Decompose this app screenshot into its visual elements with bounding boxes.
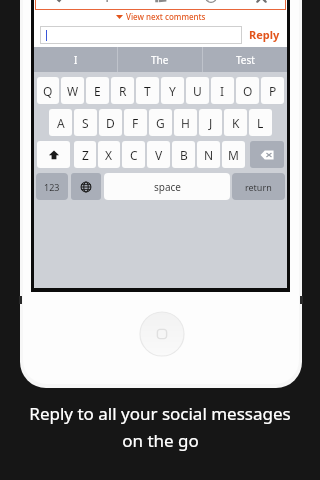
staticText: Test xyxy=(236,53,255,67)
button[interactable]: N xyxy=(197,141,220,168)
button[interactable]: space xyxy=(104,173,230,200)
button[interactable]: return xyxy=(232,173,285,200)
button[interactable]: Approve xyxy=(35,0,86,10)
staticText: Reply xyxy=(249,27,280,42)
staticText: B xyxy=(180,147,188,163)
button[interactable]: V xyxy=(147,141,170,168)
staticText: I xyxy=(74,53,78,67)
staticText: K xyxy=(232,115,240,131)
button[interactable]: U xyxy=(186,77,209,104)
button[interactable]: Switch keyboard xyxy=(71,173,101,200)
button[interactable]: I xyxy=(211,77,234,104)
staticText: return xyxy=(245,181,272,193)
button[interactable]: G xyxy=(149,109,172,136)
staticText: The xyxy=(151,53,169,67)
staticText: X xyxy=(105,147,113,163)
button[interactable]: W xyxy=(61,77,84,104)
button[interactable]: Test xyxy=(203,47,287,72)
button[interactable]: A xyxy=(49,109,72,136)
staticText: L xyxy=(257,115,264,131)
button[interactable]: The xyxy=(118,47,202,72)
staticText: C xyxy=(130,147,138,163)
button[interactable]: View next comments xyxy=(34,10,287,22)
button[interactable]: O xyxy=(236,77,259,104)
button[interactable]: T xyxy=(136,77,159,104)
staticText: Z xyxy=(82,147,89,163)
button[interactable]: L xyxy=(249,109,272,136)
staticText: W xyxy=(67,83,79,99)
staticText: J xyxy=(209,115,213,131)
staticText: P xyxy=(269,83,277,99)
button[interactable]: I xyxy=(34,47,117,72)
button[interactable]: E xyxy=(86,77,109,104)
staticText: H xyxy=(181,115,190,131)
button[interactable]: C xyxy=(122,141,145,168)
button[interactable]: Flag xyxy=(86,0,136,10)
button[interactable] xyxy=(40,26,242,44)
staticText: M xyxy=(228,147,239,163)
button[interactable]: D xyxy=(99,109,122,136)
staticText: O xyxy=(243,83,253,99)
staticText: T xyxy=(144,83,151,99)
staticText: G xyxy=(156,115,165,131)
button[interactable]: Y xyxy=(161,77,184,104)
staticText: N xyxy=(204,147,214,163)
staticText: V xyxy=(155,147,163,163)
button[interactable]: X xyxy=(98,141,120,168)
button[interactable]: Z xyxy=(74,141,96,168)
button[interactable]: F xyxy=(124,109,147,136)
staticText: S xyxy=(82,115,89,131)
button[interactable]: Block xyxy=(186,0,236,10)
button[interactable]: J xyxy=(199,109,222,136)
staticText: E xyxy=(94,83,101,99)
button[interactable]: Delete xyxy=(236,0,286,10)
button[interactable]: Reply xyxy=(249,27,280,42)
button[interactable]: M xyxy=(222,141,245,168)
staticText: F xyxy=(132,115,139,131)
button[interactable]: 123 xyxy=(36,173,68,200)
staticText: Q xyxy=(43,83,53,99)
staticText: U xyxy=(193,83,202,99)
staticText: A xyxy=(57,115,65,131)
staticText: space xyxy=(154,180,181,194)
button[interactable]: B xyxy=(172,141,195,168)
button[interactable]: Q xyxy=(37,77,59,104)
staticText: D xyxy=(106,115,115,131)
staticText: Reply to all your social messages xyxy=(29,402,291,425)
staticText: Y xyxy=(169,83,176,99)
button[interactable]: Shift xyxy=(37,141,70,168)
staticText: 123 xyxy=(44,181,60,193)
staticText: I xyxy=(220,83,225,99)
staticText: on the go xyxy=(122,429,199,452)
staticText: R xyxy=(119,83,127,99)
button[interactable]: P xyxy=(261,77,284,104)
button[interactable]: K xyxy=(224,109,247,136)
button[interactable]: H xyxy=(174,109,197,136)
staticText: View next comments xyxy=(126,11,206,22)
button[interactable]: Like xyxy=(136,0,186,10)
button[interactable]: R xyxy=(111,77,134,104)
button[interactable]: S xyxy=(74,109,97,136)
button[interactable]: Backspace xyxy=(250,141,284,168)
